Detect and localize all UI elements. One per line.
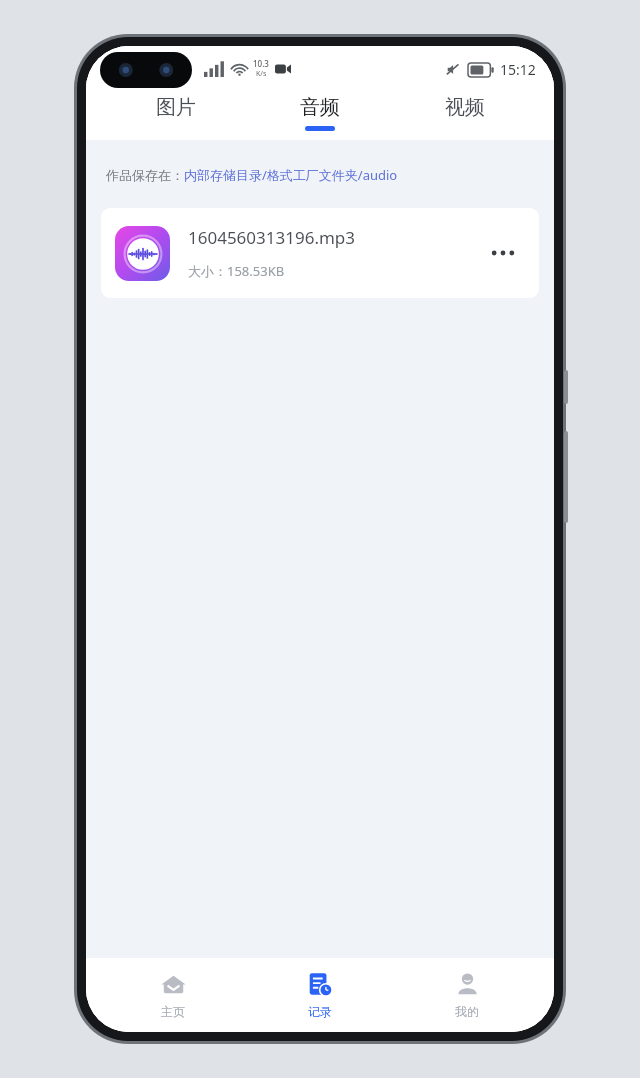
- staticText: 1604560313196.mp3: [188, 226, 356, 249]
- staticText: 主页: [161, 1004, 185, 1019]
- staticText: 作品保存在：: [106, 167, 184, 183]
- staticText: 音频: [300, 95, 340, 120]
- staticText: K/s: [256, 69, 267, 79]
- staticText: 10.3: [253, 58, 269, 69]
- button[interactable]: 主页: [113, 958, 233, 1032]
- button[interactable]: 音频: [265, 92, 375, 140]
- button[interactable]: 记录: [260, 958, 380, 1032]
- button[interactable]: 视频: [410, 92, 520, 140]
- staticText: 图片: [156, 95, 196, 120]
- button[interactable]: 图片: [121, 92, 231, 140]
- button[interactable]: More options: [481, 231, 525, 275]
- staticText: 记录: [308, 1004, 332, 1019]
- staticText: 视频: [445, 95, 485, 120]
- staticText: 15:12: [500, 60, 536, 79]
- staticText: 大小：158.53KB: [188, 262, 285, 280]
- staticText: 内部存储目录/格式工厂文件夹/audio: [184, 166, 398, 184]
- button[interactable]: 我的: [407, 958, 527, 1032]
- staticText: 我的: [455, 1004, 479, 1019]
- button[interactable]: 1604560313196.mp3: [101, 208, 539, 298]
